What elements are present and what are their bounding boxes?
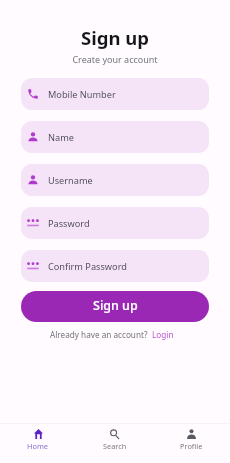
button[interactable]: Login (152, 329, 174, 340)
staticText: Search (103, 441, 127, 451)
staticText: Home (27, 441, 49, 451)
staticText: Create your account (0, 53, 230, 65)
button[interactable]: Password (21, 207, 209, 239)
button[interactable]: Sign up (21, 291, 209, 322)
staticText: Profile (180, 441, 203, 451)
staticText: Already have an account? (50, 329, 148, 340)
button[interactable]: Mobile Number (21, 78, 209, 110)
button[interactable]: Username (21, 164, 209, 196)
staticText: Login (152, 329, 174, 340)
staticText: Password (48, 217, 90, 230)
button[interactable]: Home (0, 424, 76, 463)
button[interactable]: Confirm Password (21, 250, 209, 282)
staticText: Name (48, 131, 74, 144)
button[interactable]: Profile (153, 424, 230, 463)
staticText: Sign up (0, 25, 230, 50)
button[interactable]: Name (21, 121, 209, 153)
staticText: Confirm Password (48, 260, 127, 273)
staticText: Sign up (93, 297, 138, 314)
button[interactable]: Search (76, 424, 153, 463)
staticText: Username (48, 174, 93, 187)
staticText: Mobile Number (48, 88, 116, 101)
